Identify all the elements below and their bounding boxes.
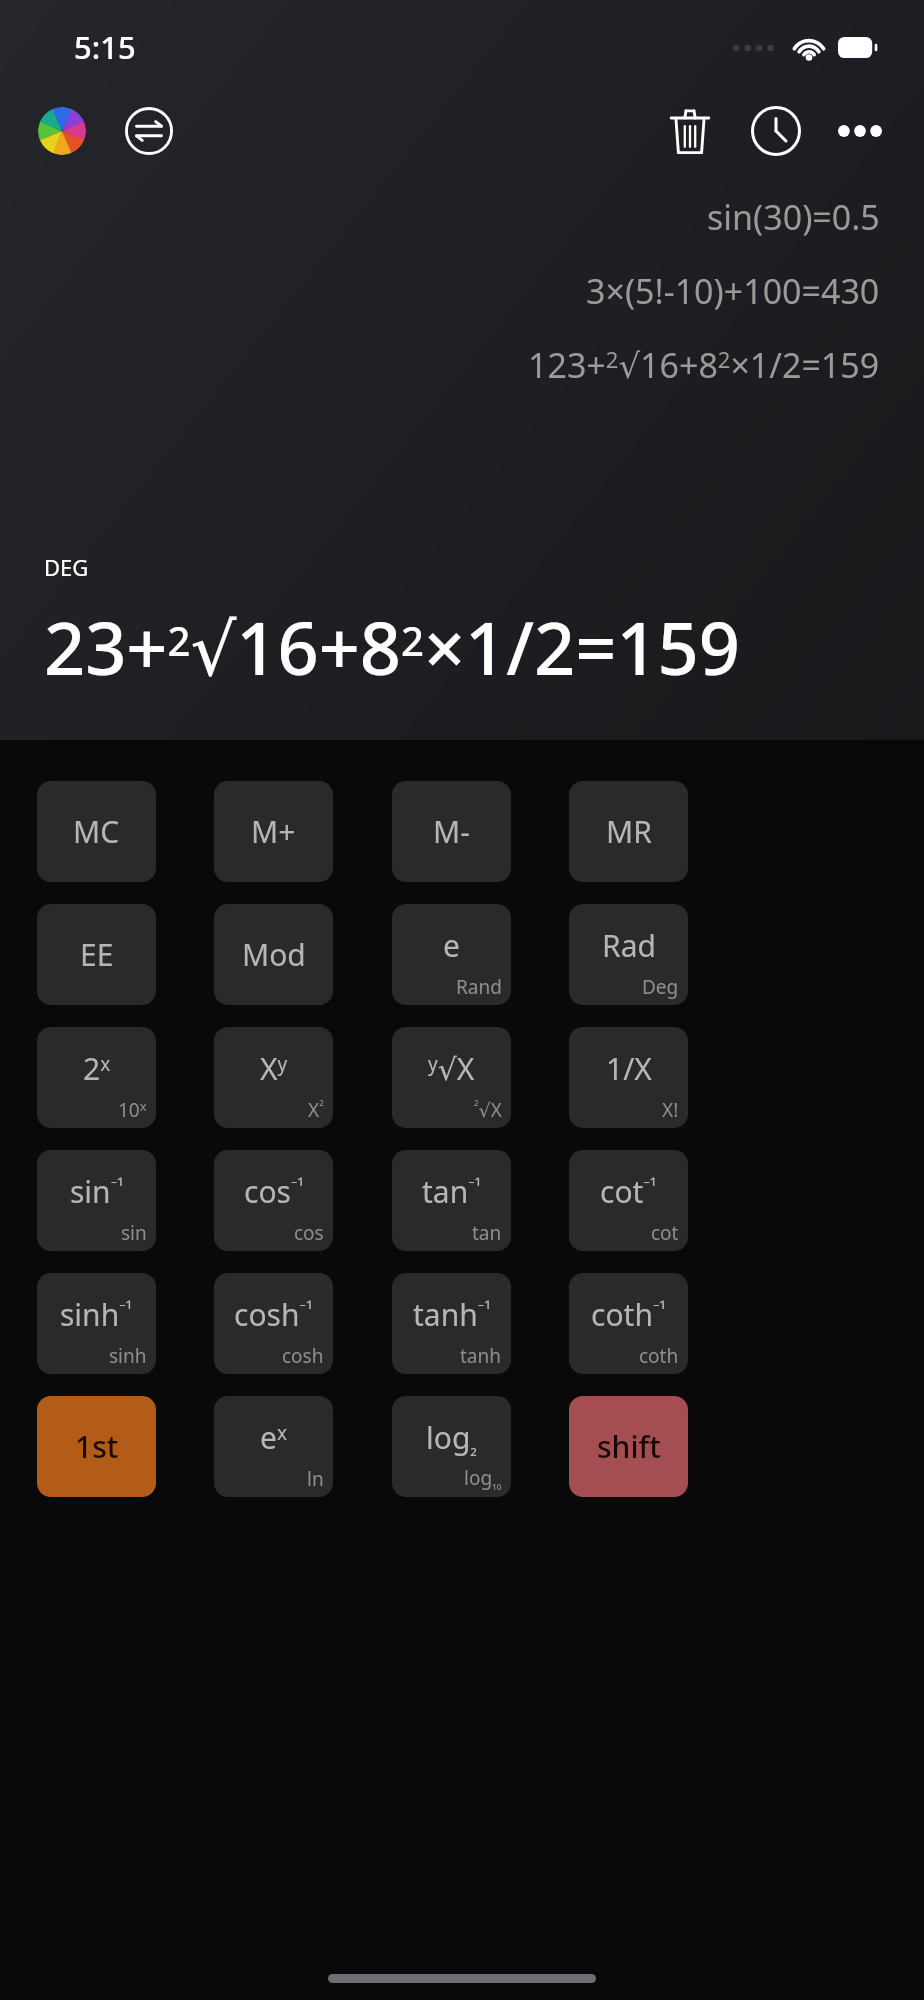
staticText: sin(30)=0.5 [707,194,880,240]
button[interactable]: cot⁻¹ [569,1150,688,1251]
button[interactable]: Unit converter [122,104,176,158]
button[interactable]: Mod [214,904,333,1005]
button[interactable]: coth⁻¹ [569,1273,688,1374]
staticText: sin [121,1220,147,1246]
button[interactable]: History [744,99,808,163]
staticText: Deg [642,974,679,1000]
staticText: EE [80,934,114,975]
staticText: 3×(5!-10)+100=430 [586,268,880,314]
staticText: 1st [75,1426,119,1467]
staticText: y√X [428,1048,475,1089]
staticText: e [443,925,460,966]
staticText: coth [639,1343,679,1369]
staticText: M- [433,811,470,852]
staticText: X² [308,1097,324,1123]
staticText: Rad [602,925,656,966]
button[interactable]: Xy [214,1027,333,1128]
staticText: Mod [242,934,306,975]
button[interactable]: cos⁻¹ [214,1150,333,1251]
staticText: shift [597,1426,661,1467]
button[interactable]: M+ [214,781,333,882]
button[interactable]: MC [37,781,156,882]
staticText: sin⁻¹ [70,1171,124,1212]
button[interactable]: 1/X [569,1027,688,1128]
staticText: tan⁻¹ [422,1171,482,1212]
staticText: X! [662,1097,679,1123]
staticText: log₂ [426,1417,477,1459]
staticText: DEG [44,552,89,582]
button[interactable]: M- [392,781,511,882]
staticText: cos [294,1220,324,1246]
staticText: tanh⁻¹ [413,1294,491,1335]
staticText: 2x [83,1048,111,1089]
staticText: Xy [260,1048,288,1089]
button[interactable]: shift [569,1396,688,1497]
staticText: log₁₀ [464,1465,502,1492]
button[interactable]: e [392,904,511,1005]
button[interactable]: More options [828,99,892,163]
staticText: Rand [456,974,502,1000]
staticText: 5:15 [74,26,136,68]
staticText: sinh [109,1343,147,1369]
button[interactable]: MR [569,781,688,882]
button[interactable]: cosh⁻¹ [214,1273,333,1374]
button[interactable]: ex [214,1396,333,1497]
button[interactable]: Rad [569,904,688,1005]
button[interactable]: Clear history [658,99,722,163]
button[interactable]: log₂ [392,1396,511,1497]
staticText: coth⁻¹ [591,1294,666,1335]
staticText: cot [651,1220,679,1246]
button[interactable]: EE [37,904,156,1005]
button[interactable]: Theme colour [38,107,86,155]
staticText: M+ [251,811,296,852]
staticText: tanh [460,1343,502,1369]
staticText: tan [472,1220,502,1246]
staticText: cosh⁻¹ [234,1294,313,1335]
staticText: 1/X [606,1048,652,1089]
button[interactable]: sin⁻¹ [37,1150,156,1251]
staticText: cosh [282,1343,324,1369]
staticText: 10x [118,1097,147,1123]
staticText: cot⁻¹ [600,1171,657,1212]
staticText: MC [73,811,120,852]
staticText: MR [606,811,652,852]
staticText: ln [307,1466,324,1492]
button[interactable]: tan⁻¹ [392,1150,511,1251]
button[interactable]: 2x [37,1027,156,1128]
staticText: 123+2√16+82×1/2=159 [528,342,880,388]
button[interactable]: tanh⁻¹ [392,1273,511,1374]
button[interactable]: sinh⁻¹ [37,1273,156,1374]
staticText: ²√X [474,1097,502,1123]
button[interactable]: y√X [392,1027,511,1128]
staticText: cos⁻¹ [244,1171,304,1212]
staticText: sinh⁻¹ [60,1294,133,1335]
staticText: 23+2√16+82×1/2=159 [44,598,740,696]
staticText: ex [260,1417,287,1458]
button[interactable]: 1st [37,1396,156,1497]
